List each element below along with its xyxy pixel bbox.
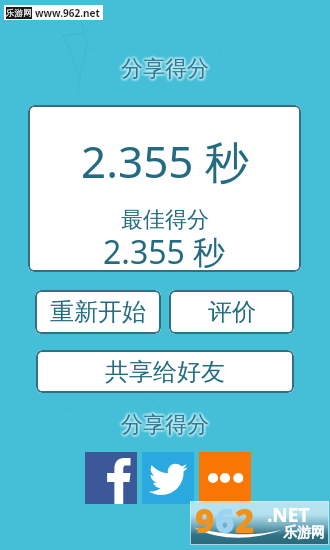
- staticText: 分享得分: [119, 409, 207, 437]
- staticText: 分享得分: [123, 411, 211, 439]
- staticText: 分享得分: [123, 57, 211, 85]
- staticText: 分享得分: [118, 411, 206, 439]
- staticText: 分享得分: [122, 412, 210, 440]
- staticText: 分享得分: [119, 57, 207, 85]
- staticText: 分享得分: [119, 412, 207, 440]
- staticText: 2.355 秒: [81, 131, 249, 191]
- staticText: 分享得分: [121, 56, 209, 84]
- staticText: 分享得分: [122, 54, 210, 82]
- staticText: 分享得分: [119, 413, 207, 441]
- staticText: 分享得分: [124, 55, 212, 83]
- staticText: 分享得分: [119, 411, 207, 439]
- staticText: 分享得分: [120, 411, 208, 439]
- staticText: 分享得分: [120, 53, 208, 81]
- staticText: 乐游网: [283, 524, 325, 542]
- staticText: 分享得分: [122, 55, 210, 83]
- staticText: 分享得分: [122, 53, 210, 81]
- button[interactable]: Share on Twitter: [142, 452, 194, 504]
- staticText: 分享得分: [123, 413, 211, 441]
- staticText: 分享得分: [119, 55, 207, 83]
- staticText: 分享得分: [119, 54, 207, 82]
- staticText: www.962.net: [35, 6, 100, 20]
- staticText: 分享得分: [121, 58, 209, 86]
- staticText: 分享得分: [120, 409, 208, 437]
- staticText: 2: [235, 498, 255, 542]
- staticText: 分享得分: [123, 412, 211, 440]
- staticText: 评价: [208, 297, 256, 327]
- staticText: 分享得分: [120, 54, 208, 82]
- staticText: 乐游网: [6, 8, 32, 19]
- staticText: 分享得分: [120, 410, 208, 438]
- staticText: 分享得分: [120, 57, 208, 85]
- staticText: .NET: [267, 502, 310, 528]
- staticText: 重新开始: [50, 297, 146, 327]
- staticText: 分享得分: [119, 56, 207, 84]
- staticText: 分享得分: [120, 56, 208, 84]
- staticText: 共享给好友: [105, 357, 225, 387]
- staticText: 分享得分: [123, 56, 211, 84]
- staticText: 分享得分: [122, 410, 210, 438]
- button[interactable]: Share on Facebook: [85, 452, 137, 504]
- staticText: 分享得分: [121, 55, 209, 83]
- staticText: 分享得分: [121, 412, 209, 440]
- button[interactable]: More share options: [199, 452, 251, 504]
- staticText: 分享得分: [123, 53, 211, 81]
- button[interactable]: 共享给好友: [36, 350, 294, 393]
- staticText: 分享得分: [123, 55, 211, 83]
- staticText: 9: [195, 498, 215, 542]
- staticText: 分享得分: [119, 53, 207, 81]
- staticText: 分享得分: [123, 409, 211, 437]
- staticText: 分享得分: [121, 411, 209, 439]
- staticText: 分享得分: [121, 54, 209, 82]
- staticText: 分享得分: [118, 55, 206, 83]
- staticText: 分享得分: [122, 411, 210, 439]
- button[interactable]: 重新开始: [35, 290, 161, 334]
- staticText: 分享得分: [119, 410, 207, 438]
- staticText: 分享得分: [121, 53, 209, 81]
- staticText: 2.355 秒: [103, 230, 226, 272]
- staticText: 分享得分: [122, 413, 210, 441]
- staticText: 分享得分: [120, 412, 208, 440]
- staticText: 分享得分: [124, 411, 212, 439]
- button[interactable]: 评价: [169, 290, 294, 334]
- staticText: 6: [215, 498, 235, 542]
- staticText: 分享得分: [123, 410, 211, 438]
- staticText: 最佳得分: [121, 206, 209, 234]
- staticText: 分享得分: [122, 57, 210, 85]
- staticText: 分享得分: [123, 54, 211, 82]
- staticText: 分享得分: [121, 52, 209, 80]
- staticText: 分享得分: [121, 410, 209, 438]
- staticText: 分享得分: [121, 409, 209, 437]
- staticText: 分享得分: [121, 414, 209, 442]
- staticText: 分享得分: [121, 57, 209, 85]
- staticText: 分享得分: [122, 56, 210, 84]
- staticText: 分享得分: [121, 413, 209, 441]
- staticText: 分享得分: [121, 408, 209, 436]
- staticText: 分享得分: [120, 413, 208, 441]
- staticText: 分享得分: [122, 409, 210, 437]
- staticText: 分享得分: [120, 55, 208, 83]
